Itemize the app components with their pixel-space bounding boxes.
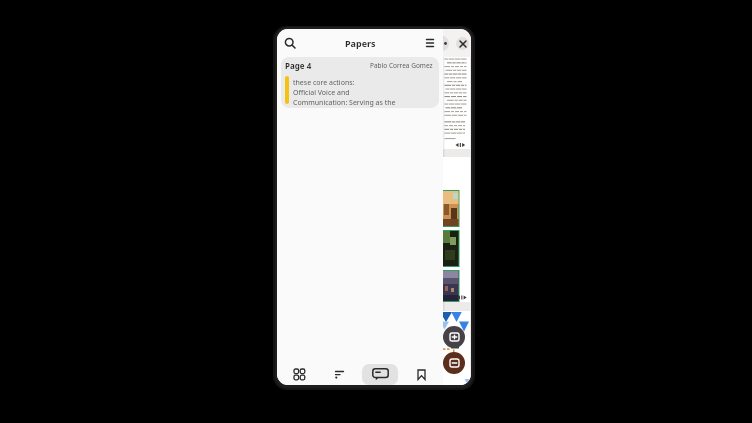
button[interactable] [443, 326, 465, 348]
button[interactable] [403, 364, 439, 385]
staticText: Communication: Serving as the [293, 98, 396, 108]
button[interactable] [443, 352, 465, 374]
button[interactable] [281, 364, 317, 385]
button[interactable] [362, 364, 398, 385]
button[interactable] [421, 34, 439, 52]
button[interactable] [322, 364, 358, 385]
staticText: these core actions: [293, 78, 355, 88]
button[interactable] [281, 34, 299, 52]
staticText: Pablo Correa Gomez [370, 61, 433, 70]
button[interactable]: Page 4 [281, 57, 439, 108]
staticText: Papers [345, 37, 376, 49]
staticText: Page 4 [285, 60, 312, 71]
button[interactable] [456, 37, 469, 50]
staticText: Official Voice and [293, 88, 350, 98]
